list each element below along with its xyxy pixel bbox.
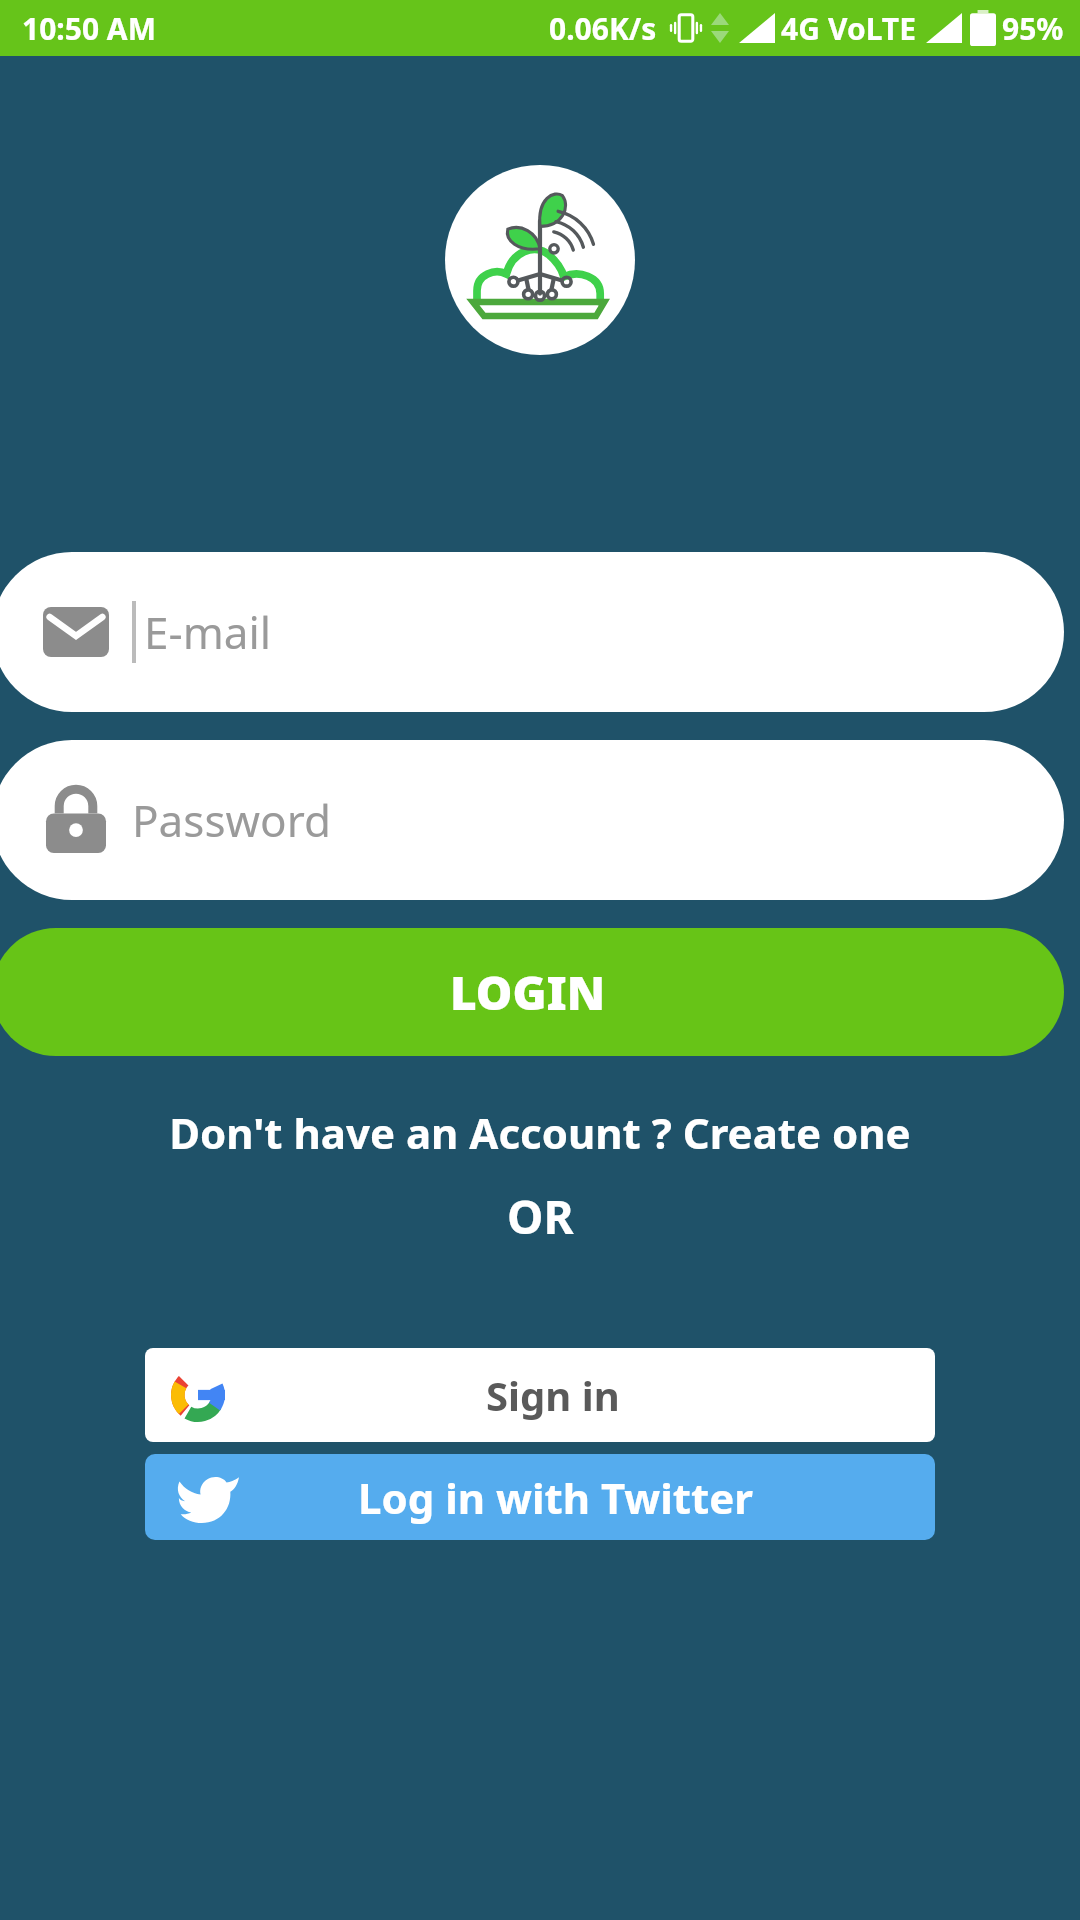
button[interactable]: E-mail [0, 552, 1064, 712]
staticText: LOGIN [450, 961, 606, 1024]
staticText: 95% [1002, 8, 1064, 49]
staticText: Don't have an Account ? Create one [169, 1104, 911, 1161]
staticText: 0.06K/s [549, 8, 657, 49]
staticText: 10:50 AM [22, 8, 156, 49]
staticText: Log in with Twitter [358, 1469, 754, 1526]
staticText: OR [507, 1185, 574, 1248]
staticText: Sign in [486, 1368, 620, 1422]
button[interactable]: Don't have an Account ? Create one [0, 1104, 1080, 1161]
button[interactable]: Sign in [145, 1348, 935, 1442]
staticText: 4G [781, 8, 820, 49]
button[interactable]: LOGIN [0, 928, 1064, 1056]
button[interactable]: Password [0, 740, 1064, 900]
staticText: VoLTE [828, 8, 916, 49]
staticText: Password [132, 790, 332, 850]
button[interactable]: Log in with Twitter [145, 1454, 935, 1540]
staticText: E-mail [144, 602, 272, 662]
